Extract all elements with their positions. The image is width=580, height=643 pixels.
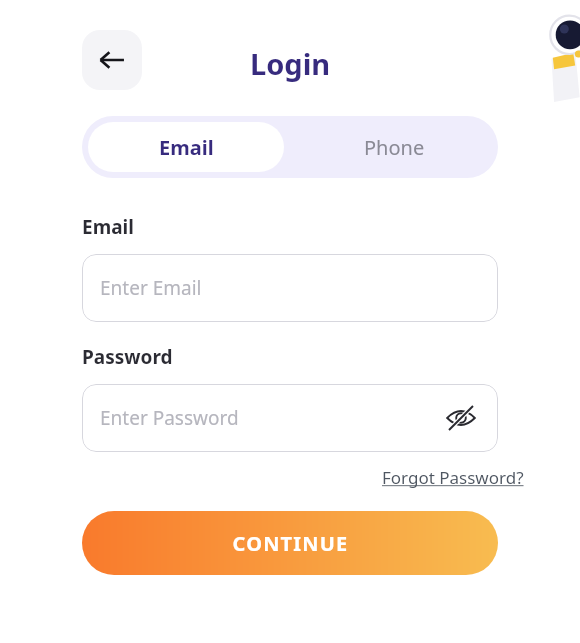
staticText: Enter Email [100, 275, 202, 301]
button[interactable]: Back [82, 30, 142, 90]
staticText: Enter Password [100, 405, 239, 431]
button[interactable]: Email [88, 122, 284, 172]
button[interactable]: Forgot Password? [382, 466, 524, 489]
button[interactable]: Enter Email [82, 254, 498, 322]
button[interactable]: CONTINUE [82, 511, 498, 575]
staticText: Password [82, 344, 173, 370]
staticText: Phone [364, 134, 425, 161]
staticText: Email [159, 134, 214, 161]
staticText: Login [250, 44, 331, 83]
button[interactable]: Phone [290, 116, 498, 178]
staticText: CONTINUE [232, 530, 349, 557]
button[interactable]: Show password [444, 401, 478, 435]
button[interactable]: Enter Password [82, 384, 498, 452]
staticText: Email [82, 214, 134, 240]
